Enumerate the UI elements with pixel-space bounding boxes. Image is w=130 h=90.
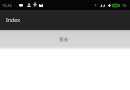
button[interactable]: Index — [0, 10, 130, 30]
staticText: Index — [6, 16, 21, 23]
staticText: 76 — [122, 3, 127, 8]
staticText: 基金 — [59, 36, 69, 42]
staticText: 15:26 — [2, 3, 12, 8]
